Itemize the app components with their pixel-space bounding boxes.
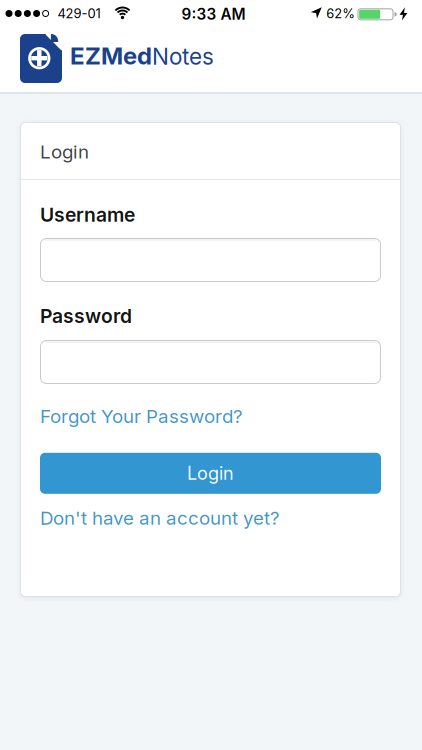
- staticText: Notes: [152, 43, 214, 70]
- staticText: Login: [40, 140, 89, 163]
- staticText: 429-01: [57, 6, 100, 21]
- button[interactable]: [40, 340, 381, 384]
- staticText: Password: [40, 304, 132, 328]
- staticText: EZMed: [70, 41, 152, 70]
- staticText: 62%: [326, 6, 355, 21]
- staticText: Forgot Your Password?: [40, 405, 243, 428]
- staticText: Username: [40, 203, 135, 226]
- staticText: 9:33 AM: [181, 5, 245, 23]
- staticText: Login: [187, 462, 234, 484]
- button[interactable]: Forgot Your Password?: [40, 405, 243, 428]
- button[interactable]: Login: [40, 453, 381, 494]
- staticText: Don't have an account yet?: [40, 507, 280, 529]
- button[interactable]: [40, 238, 381, 282]
- button[interactable]: Don't have an account yet?: [40, 507, 280, 529]
